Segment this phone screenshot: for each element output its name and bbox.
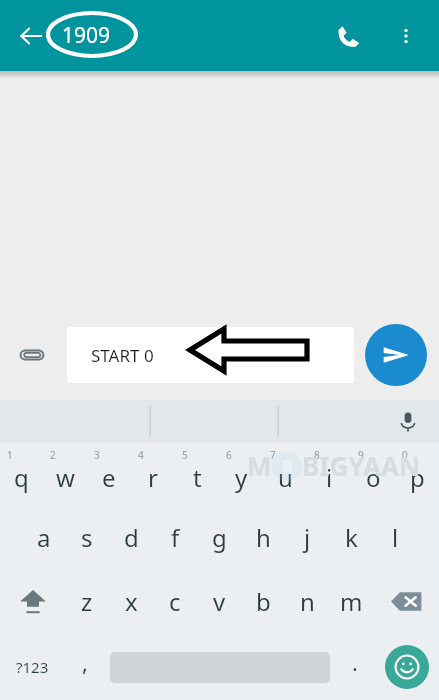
button[interactable]: Back [8,13,54,59]
staticText: 5 [182,448,188,462]
staticText: 8 [314,448,320,462]
staticText: u [278,461,293,494]
staticText: 9 [358,448,364,462]
staticText: y [235,461,248,494]
staticText: , [82,647,88,677]
staticText: r [148,461,158,494]
button[interactable]: Shift [0,569,65,634]
button[interactable]: 7 [263,443,307,506]
staticText: f [171,521,180,554]
staticText: v [213,585,226,618]
button[interactable]: Backspace [373,569,439,634]
button[interactable]: f [153,506,197,569]
button[interactable]: x [109,569,153,634]
staticText: q [14,461,29,494]
button[interactable]: z [65,569,109,634]
button[interactable]: Call [325,13,371,59]
staticText: 7 [270,448,276,462]
button[interactable]: 8 [307,443,351,506]
button[interactable]: l [373,506,417,569]
staticText: 0 [402,448,408,462]
staticText: p [410,461,425,494]
staticText: h [256,521,271,554]
button[interactable]: k [329,506,373,569]
staticText: 6 [226,448,232,462]
staticText: s [81,521,93,554]
staticText: t [193,461,202,494]
button[interactable]: 5 [175,443,219,506]
button[interactable]: 4 [131,443,175,506]
button[interactable]: Attach [8,331,56,379]
button[interactable]: 9 [351,443,395,506]
button[interactable]: c [153,569,197,634]
staticText: a [37,521,51,554]
staticText: i [326,461,333,494]
button[interactable]: 0 [395,443,439,506]
button[interactable]: Send [365,324,427,386]
button[interactable]: g [197,506,241,569]
staticText: 4 [138,448,144,462]
button[interactable]: m [329,569,373,634]
staticText: g [212,521,227,554]
staticText: e [102,461,116,494]
staticText: BIGYAAN [302,448,421,483]
button[interactable]: Space [105,634,334,700]
staticText: l [392,521,399,554]
staticText: 1909 [62,21,111,50]
button[interactable]: a [22,506,65,569]
staticText: d [124,521,139,554]
button[interactable]: d [109,506,153,569]
button[interactable]: START 0 [67,327,354,383]
button[interactable]: j [285,506,329,569]
staticText: . [352,647,358,677]
staticText: o [366,461,381,494]
button[interactable]: h [241,506,285,569]
staticText: w [56,461,75,494]
staticText: b [256,585,271,618]
staticText: z [81,585,93,618]
staticText: M [247,448,272,483]
button[interactable]: 1 [0,443,43,506]
staticText: 2 [50,448,56,462]
staticText: x [125,585,138,618]
button[interactable]: b [241,569,285,634]
staticText: n [300,585,315,618]
staticText: k [345,521,358,554]
staticText: c [169,585,181,618]
button[interactable]: ?123 [0,634,64,700]
button[interactable]: Emoji [375,634,439,700]
staticText: START 0 [91,344,154,367]
button[interactable]: 6 [219,443,263,506]
button[interactable]: v [197,569,241,634]
button[interactable]: More options [383,13,429,59]
staticText: ?123 [16,657,49,677]
staticText: 3 [94,448,100,462]
staticText: 1 [7,448,13,462]
button[interactable]: 2 [43,443,87,506]
staticText: m [340,585,363,618]
button[interactable]: n [285,569,329,634]
button[interactable]: 3 [87,443,131,506]
button[interactable]: Voice input [391,405,425,439]
button[interactable]: , [64,634,105,700]
button[interactable]: s [65,506,109,569]
button[interactable]: . [334,634,375,700]
staticText: j [304,521,311,554]
